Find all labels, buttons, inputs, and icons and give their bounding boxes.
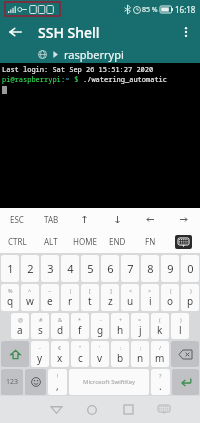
- button[interactable]: (: [161, 284, 179, 311]
- staticText: ': [99, 344, 101, 351]
- button[interactable]: ;: [131, 341, 149, 367]
- button[interactable]: :: [111, 341, 129, 367]
- button[interactable]: ': [91, 341, 109, 367]
- button[interactable]: =: [131, 313, 149, 339]
- button[interactable]: Hide keyboard: [146, 396, 182, 423]
- button[interactable]: 3: [41, 255, 59, 282]
- staticText: p: [187, 294, 194, 308]
- button[interactable]: 123: [1, 369, 23, 395]
- staticText: ;: [140, 344, 142, 351]
- button[interactable]: |: [61, 284, 79, 311]
- button[interactable]: 2: [21, 255, 39, 282]
- staticText: -: [100, 316, 102, 323]
- button[interactable]: %: [1, 284, 19, 311]
- staticText: (: [170, 287, 172, 294]
- staticText: o: [167, 294, 174, 308]
- staticText: ,: [56, 379, 59, 393]
- staticText: e: [47, 294, 53, 308]
- staticText: k: [157, 323, 163, 337]
- button[interactable]: ): [181, 284, 199, 311]
- button[interactable]: Backspace: [171, 341, 199, 367]
- button[interactable]: Right: [167, 208, 200, 230]
- button[interactable]: Home: [74, 396, 110, 423]
- button[interactable]: Space: [69, 369, 149, 395]
- button[interactable]: <: [121, 284, 139, 311]
- button[interactable]: -: [91, 313, 109, 339]
- button[interactable]: 4: [61, 255, 79, 282]
- staticText: ): [190, 287, 192, 294]
- button[interactable]: Up: [68, 208, 101, 230]
- staticText: raspberrypi: [64, 47, 124, 62]
- button[interactable]: [: [81, 284, 99, 311]
- staticText: #: [39, 316, 43, 323]
- button[interactable]: 7: [121, 255, 139, 282]
- button[interactable]: Shift: [1, 341, 29, 367]
- button[interactable]: @: [11, 313, 29, 339]
- button[interactable]: Enter: [172, 369, 199, 395]
- button[interactable]: *: [71, 313, 89, 339]
- staticText: !: [57, 372, 59, 379]
- staticText: 6: [107, 261, 114, 276]
- button[interactable]: &: [51, 313, 69, 339]
- button[interactable]: Left: [134, 208, 167, 230]
- staticText: $: [70, 75, 83, 85]
- button[interactable]: ?: [151, 369, 170, 395]
- staticText: t: [88, 294, 92, 308]
- button[interactable]: #: [31, 313, 49, 339]
- button[interactable]: 6: [101, 255, 119, 282]
- staticText: CTRL: [8, 236, 27, 247]
- staticText: r: [68, 294, 73, 308]
- button[interactable]: ): [171, 313, 189, 339]
- button[interactable]: 8: [141, 255, 159, 282]
- staticText: END: [109, 236, 126, 247]
- staticText: b: [117, 351, 124, 365]
- button[interactable]: TAB: [34, 208, 68, 230]
- button[interactable]: 9: [161, 255, 179, 282]
- staticText: s: [38, 323, 43, 337]
- staticText: /: [159, 344, 162, 351]
- staticText: m: [155, 351, 165, 365]
- button[interactable]: ALT: [34, 230, 68, 253]
- button[interactable]: 5: [81, 255, 99, 282]
- staticText: ": [79, 344, 82, 351]
- button[interactable]: FN: [134, 230, 167, 253]
- staticText: <: [129, 287, 133, 294]
- staticText: h: [117, 323, 124, 337]
- staticText: €: [58, 344, 62, 351]
- button[interactable]: +: [111, 313, 129, 339]
- staticText: a: [17, 323, 23, 337]
- button[interactable]: Back: [38, 396, 74, 423]
- button[interactable]: More options: [172, 18, 200, 46]
- button[interactable]: CTRL: [0, 230, 34, 253]
- staticText: [: [89, 287, 91, 294]
- button[interactable]: 0: [181, 255, 199, 282]
- button[interactable]: ESC: [0, 208, 34, 230]
- staticText: ESC: [10, 214, 24, 225]
- staticText: (: [159, 316, 161, 323]
- button[interactable]: ^: [21, 284, 39, 311]
- button[interactable]: !: [48, 369, 67, 395]
- button[interactable]: END: [101, 230, 134, 253]
- button[interactable]: >: [141, 284, 159, 311]
- staticText: Microsoft SwiftKey: [83, 378, 135, 386]
- button[interactable]: ": [71, 341, 89, 367]
- staticText: Last login: Sat Sep 26 15:51:27 2020: [2, 65, 154, 75]
- staticText: 3: [47, 261, 54, 276]
- button[interactable]: €: [51, 341, 69, 367]
- staticText: TAB: [44, 214, 59, 225]
- staticText: %: [8, 287, 13, 294]
- button[interactable]: 1: [1, 255, 19, 282]
- button[interactable]: Hide keyboard: [167, 230, 200, 253]
- button[interactable]: (: [151, 313, 169, 339]
- button[interactable]: Down: [101, 208, 134, 230]
- staticText: 16:18: [175, 4, 196, 15]
- button[interactable]: -: [31, 341, 49, 367]
- button[interactable]: ~: [41, 284, 59, 311]
- button[interactable]: HOME: [68, 230, 101, 253]
- button[interactable]: Back: [0, 18, 30, 46]
- button[interactable]: Emoji: [25, 369, 46, 395]
- button[interactable]: /: [151, 341, 169, 367]
- button[interactable]: Recent apps: [110, 396, 146, 423]
- button[interactable]: ]: [101, 284, 119, 311]
- staticText: 5: [87, 261, 94, 276]
